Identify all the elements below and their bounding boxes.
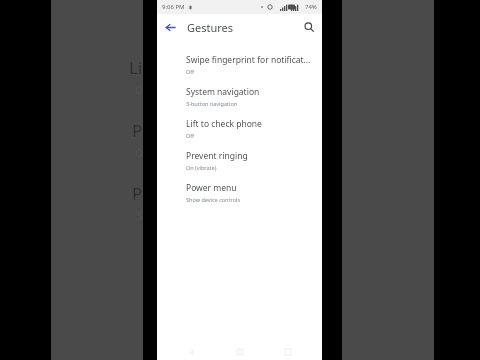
button[interactable]: Home [225, 344, 255, 360]
staticText: P [132, 182, 143, 205]
staticText: Gestures [187, 20, 234, 35]
staticText: Power menu [186, 182, 237, 194]
button[interactable]: Search [296, 14, 322, 40]
staticText: Swipe fingerprint for notifications [186, 54, 312, 66]
staticText: Off [186, 132, 195, 139]
button[interactable]: Lift to check phone [157, 112, 322, 144]
staticText: Show device controls [186, 196, 241, 203]
button[interactable]: Back [157, 14, 183, 40]
staticText: P [132, 119, 143, 142]
staticText: System navigation [186, 86, 260, 98]
button[interactable]: System navigation [157, 80, 322, 112]
staticText: Prevent ringing [186, 150, 248, 162]
staticText: 9:06 PM [162, 3, 185, 11]
button[interactable]: Recents [273, 344, 303, 360]
staticText: 3-button navigation [186, 100, 238, 107]
button[interactable]: Swipe fingerprint for notifications [157, 48, 322, 80]
staticText: Off [186, 68, 195, 75]
staticText: On (vibrate) [186, 164, 217, 171]
staticText: Lift to check phone [186, 118, 262, 130]
staticText: Li [129, 56, 143, 79]
button[interactable]: Power menu [157, 176, 322, 208]
button[interactable]: Prevent ringing [157, 144, 322, 176]
staticText: 74% [305, 3, 317, 11]
